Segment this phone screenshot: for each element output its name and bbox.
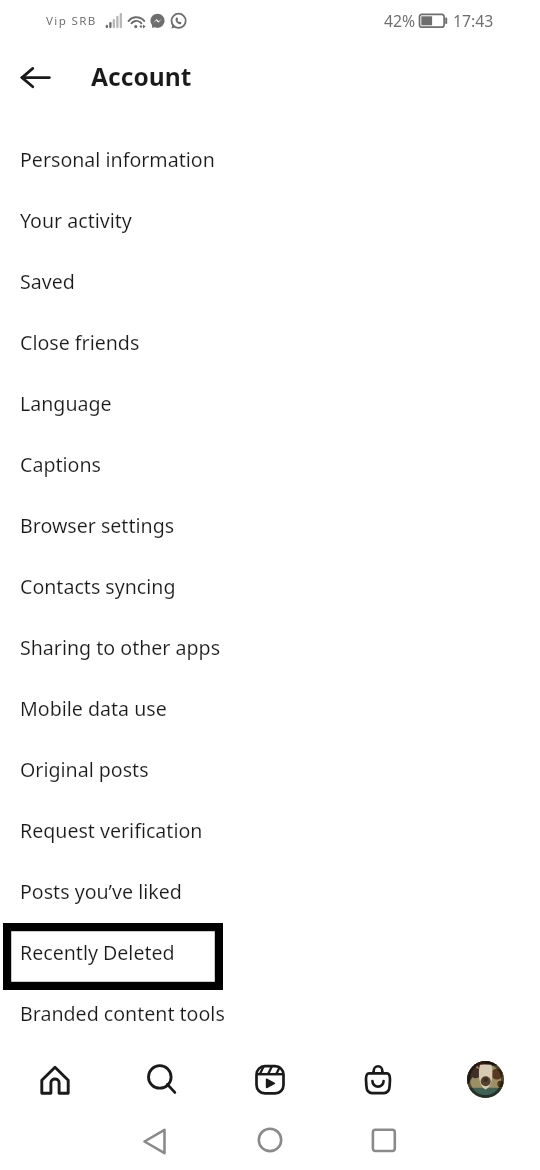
staticText: Close friends <box>20 329 140 356</box>
staticText: Personal information <box>20 146 215 173</box>
button[interactable]: Your activity <box>0 196 540 257</box>
button[interactable]: Reels <box>243 1053 297 1107</box>
button[interactable]: Home <box>245 1116 295 1166</box>
staticText: Original posts <box>20 756 149 783</box>
staticText: Sharing to other apps <box>20 634 221 661</box>
button[interactable]: Original posts <box>0 745 540 806</box>
staticText: Branded content tools <box>20 1000 225 1027</box>
button[interactable]: Home <box>28 1053 82 1107</box>
staticText: Vip SRB <box>46 13 97 29</box>
staticText: Posts you’ve liked <box>20 878 182 905</box>
staticText: 17:43 <box>453 10 494 32</box>
button[interactable]: Recents <box>359 1116 409 1166</box>
staticText: Saved <box>20 268 75 295</box>
button[interactable]: Search <box>132 1053 186 1107</box>
button[interactable]: Saved <box>0 257 540 318</box>
button[interactable]: Browser settings <box>0 501 540 562</box>
staticText: Mobile data use <box>20 695 167 722</box>
button[interactable]: Back <box>8 56 54 102</box>
staticText: 42% <box>384 10 416 32</box>
button[interactable]: Request verification <box>0 806 540 867</box>
staticText: Request verification <box>20 817 203 844</box>
staticText: Browser settings <box>20 512 175 539</box>
button[interactable]: Profile <box>467 1061 504 1098</box>
button[interactable]: Mobile data use <box>0 684 540 745</box>
button[interactable]: Recently Deleted <box>0 928 540 989</box>
button[interactable]: Contacts syncing <box>0 562 540 623</box>
button[interactable]: Branded content tools <box>0 989 540 1050</box>
button[interactable]: Shop <box>351 1053 405 1107</box>
button[interactable]: Personal information <box>0 135 540 196</box>
button[interactable]: Posts you’ve liked <box>0 867 540 928</box>
staticText: Contacts syncing <box>20 573 176 600</box>
staticText: Language <box>20 390 112 417</box>
button[interactable]: Sharing to other apps <box>0 623 540 684</box>
staticText: Recently Deleted <box>20 939 175 966</box>
button[interactable]: Language <box>0 379 540 440</box>
button[interactable]: Close friends <box>0 318 540 379</box>
staticText: Account <box>91 60 192 94</box>
staticText: Captions <box>20 451 101 478</box>
button[interactable]: Back <box>129 1116 179 1166</box>
button[interactable]: Captions <box>0 440 540 501</box>
staticText: Your activity <box>20 207 132 234</box>
